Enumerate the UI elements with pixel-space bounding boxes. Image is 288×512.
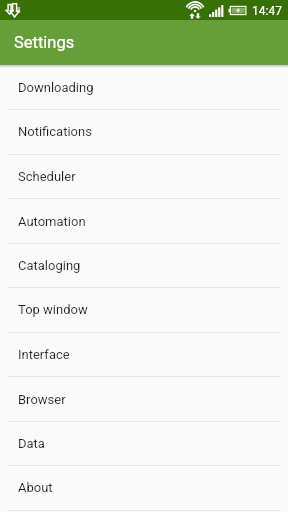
staticText: About bbox=[18, 480, 53, 495]
staticText: Data bbox=[18, 436, 45, 451]
staticText: Automation bbox=[18, 214, 86, 229]
staticText: Notifications bbox=[18, 124, 92, 139]
staticText: Settings bbox=[14, 33, 75, 52]
button[interactable]: Automation bbox=[0, 199, 288, 243]
staticText: Cataloging bbox=[18, 258, 81, 273]
button[interactable]: Cataloging bbox=[0, 243, 288, 287]
staticText: Interface bbox=[18, 347, 70, 362]
staticText: Downloading bbox=[18, 80, 94, 95]
button[interactable]: Scheduler bbox=[0, 154, 288, 198]
staticText: Browser bbox=[18, 392, 66, 407]
other: Downloads bbox=[4, 2, 24, 19]
button[interactable]: Top window bbox=[0, 287, 288, 331]
staticText: Top window bbox=[18, 302, 88, 317]
button[interactable]: About bbox=[0, 465, 288, 509]
button[interactable]: Data bbox=[0, 421, 288, 465]
button[interactable]: Notifications bbox=[0, 109, 288, 153]
staticText: 14:47 bbox=[252, 4, 282, 18]
button[interactable]: Downloading bbox=[0, 65, 288, 109]
button[interactable]: Interface bbox=[0, 332, 288, 376]
staticText: Scheduler bbox=[18, 169, 76, 184]
button[interactable]: Browser bbox=[0, 377, 288, 421]
